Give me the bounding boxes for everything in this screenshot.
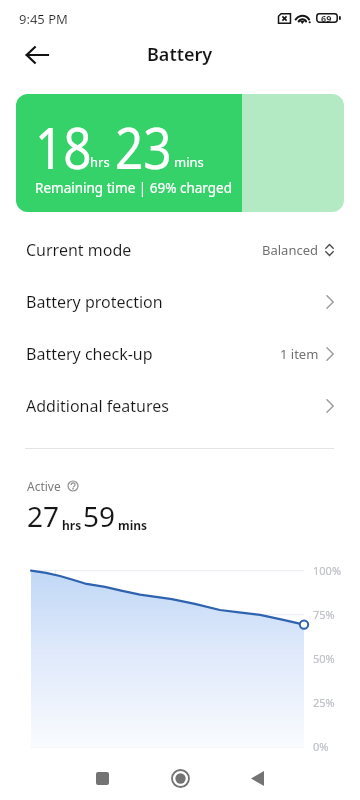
button[interactable]: 18 bbox=[16, 94, 344, 212]
staticText: 23 bbox=[115, 109, 172, 186]
button[interactable]: Home bbox=[156, 752, 204, 800]
staticText: 59 bbox=[83, 497, 116, 535]
staticText: Battery bbox=[147, 42, 213, 67]
staticText: 75% bbox=[313, 607, 335, 622]
staticText: 9:45 PM bbox=[19, 10, 68, 28]
button[interactable]: Battery protection bbox=[0, 276, 360, 328]
staticText: 50% bbox=[313, 651, 335, 666]
button[interactable]: Back bbox=[14, 32, 60, 78]
staticText: mins bbox=[118, 517, 148, 533]
staticText: 27 bbox=[27, 497, 60, 535]
button[interactable]: Recent apps bbox=[78, 752, 126, 800]
button[interactable]: Back bbox=[233, 752, 281, 800]
staticText: Balanced bbox=[262, 241, 318, 259]
staticText: Battery protection bbox=[26, 291, 163, 313]
staticText: Additional features bbox=[26, 395, 169, 417]
button[interactable]: Battery check-up bbox=[0, 328, 360, 380]
staticText: mins bbox=[174, 153, 204, 171]
staticText: Current mode bbox=[26, 239, 132, 261]
staticText: 0% bbox=[313, 739, 329, 754]
button[interactable]: Additional features bbox=[0, 380, 360, 432]
staticText: 25% bbox=[313, 695, 335, 710]
staticText: 18 bbox=[35, 109, 92, 186]
staticText: hrs bbox=[62, 517, 82, 533]
staticText: 1 item bbox=[280, 345, 319, 363]
staticText: 100% bbox=[313, 563, 342, 578]
staticText: 69 bbox=[321, 12, 332, 22]
staticText: hrs bbox=[90, 153, 110, 171]
staticText: Active bbox=[27, 478, 61, 494]
staticText: Battery check-up bbox=[26, 343, 153, 365]
button[interactable]: Current mode bbox=[0, 224, 360, 276]
staticText: Remaining time | 69% charged bbox=[35, 179, 232, 197]
button[interactable]: Active bbox=[27, 478, 79, 494]
other: Help bbox=[67, 480, 79, 492]
